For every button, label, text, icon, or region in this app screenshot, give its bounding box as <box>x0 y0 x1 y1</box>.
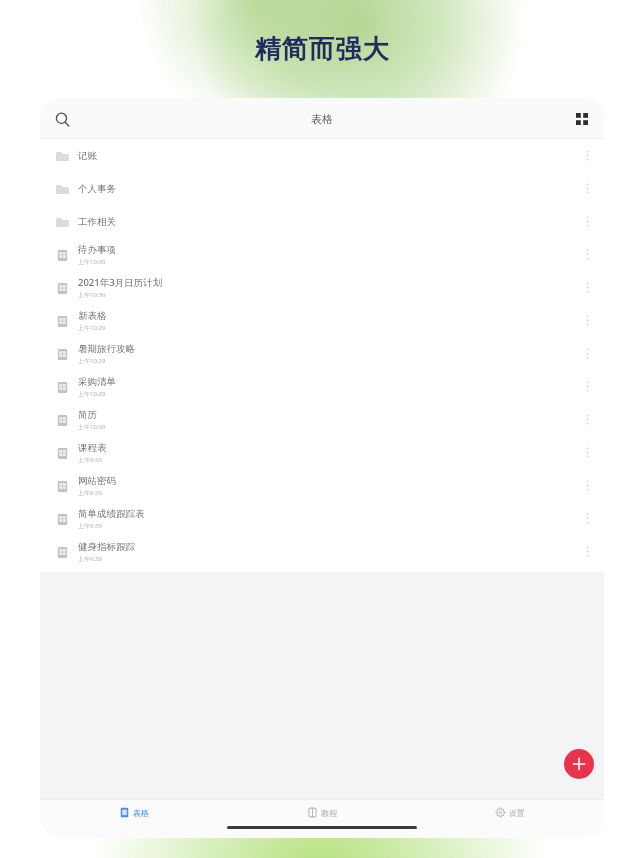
staticText: 简单成绩跟踪表 <box>78 508 145 520</box>
button[interactable]: 新建 <box>564 749 594 779</box>
staticText: 记账 <box>78 150 97 162</box>
button[interactable]: 简单成绩跟踪表 <box>40 502 604 535</box>
staticText: 个人事务 <box>78 183 116 195</box>
button[interactable]: 更多选项 <box>574 370 600 403</box>
button[interactable]: 记账 <box>40 139 604 172</box>
button[interactable]: 更多选项 <box>574 436 600 469</box>
button[interactable]: 更多选项 <box>574 172 600 205</box>
button[interactable]: 新表格 <box>40 304 604 337</box>
staticText: 健身指标跟踪 <box>78 541 135 553</box>
button[interactable]: 个人事务 <box>40 172 604 205</box>
staticText: 上午10:30 <box>78 291 106 299</box>
button[interactable]: 网格视图 <box>567 104 597 134</box>
button[interactable]: 表格 <box>40 800 228 825</box>
button[interactable]: 网站密码 <box>40 469 604 502</box>
staticText: 精简而强大 <box>254 33 389 66</box>
staticText: 教程 <box>321 808 337 818</box>
button[interactable]: 2021年3月日历计划 <box>40 271 604 304</box>
button[interactable]: 设置 <box>416 800 604 825</box>
staticText: 2021年3月日历计划 <box>78 276 163 289</box>
button[interactable]: 教程 <box>228 800 416 825</box>
button[interactable]: 课程表 <box>40 436 604 469</box>
staticText: 上午9:38 <box>78 555 102 563</box>
staticText: 采购清单 <box>78 376 116 388</box>
button[interactable]: 待办事项 <box>40 238 604 271</box>
button[interactable]: 更多选项 <box>574 139 600 172</box>
staticText: 表格 <box>133 808 149 818</box>
staticText: 暑期旅行攻略 <box>78 343 135 355</box>
staticText: 上午9:39 <box>78 522 102 530</box>
staticText: 上午9:45 <box>78 456 102 464</box>
button[interactable]: 健身指标跟踪 <box>40 535 604 568</box>
button[interactable]: 更多选项 <box>574 271 600 304</box>
staticText: 上午10:29 <box>78 357 106 365</box>
button[interactable]: 简历 <box>40 403 604 436</box>
button[interactable]: 更多选项 <box>574 238 600 271</box>
button[interactable]: 采购清单 <box>40 370 604 403</box>
staticText: 上午10:29 <box>78 324 106 332</box>
staticText: 上午9:39 <box>78 489 102 497</box>
button[interactable]: 工作相关 <box>40 205 604 238</box>
staticText: 上午10:00 <box>78 423 106 431</box>
staticText: 课程表 <box>78 442 107 454</box>
staticText: 表格 <box>311 112 333 126</box>
staticText: 待办事项 <box>78 244 116 256</box>
button[interactable]: 更多选项 <box>574 304 600 337</box>
staticText: 简历 <box>78 409 97 421</box>
button[interactable]: 更多选项 <box>574 535 600 568</box>
staticText: 网站密码 <box>78 475 116 487</box>
button[interactable]: 更多选项 <box>574 205 600 238</box>
button[interactable]: 更多选项 <box>574 403 600 436</box>
button[interactable]: 更多选项 <box>574 469 600 502</box>
staticText: 上午10:29 <box>78 390 106 398</box>
staticText: 设置 <box>509 808 525 818</box>
staticText: 上午10:30 <box>78 258 106 266</box>
button[interactable]: 暑期旅行攻略 <box>40 337 604 370</box>
staticText: 新表格 <box>78 310 107 322</box>
button[interactable]: 搜索 <box>47 104 77 134</box>
button[interactable]: 更多选项 <box>574 502 600 535</box>
staticText: 工作相关 <box>78 216 116 228</box>
button[interactable]: 更多选项 <box>574 337 600 370</box>
